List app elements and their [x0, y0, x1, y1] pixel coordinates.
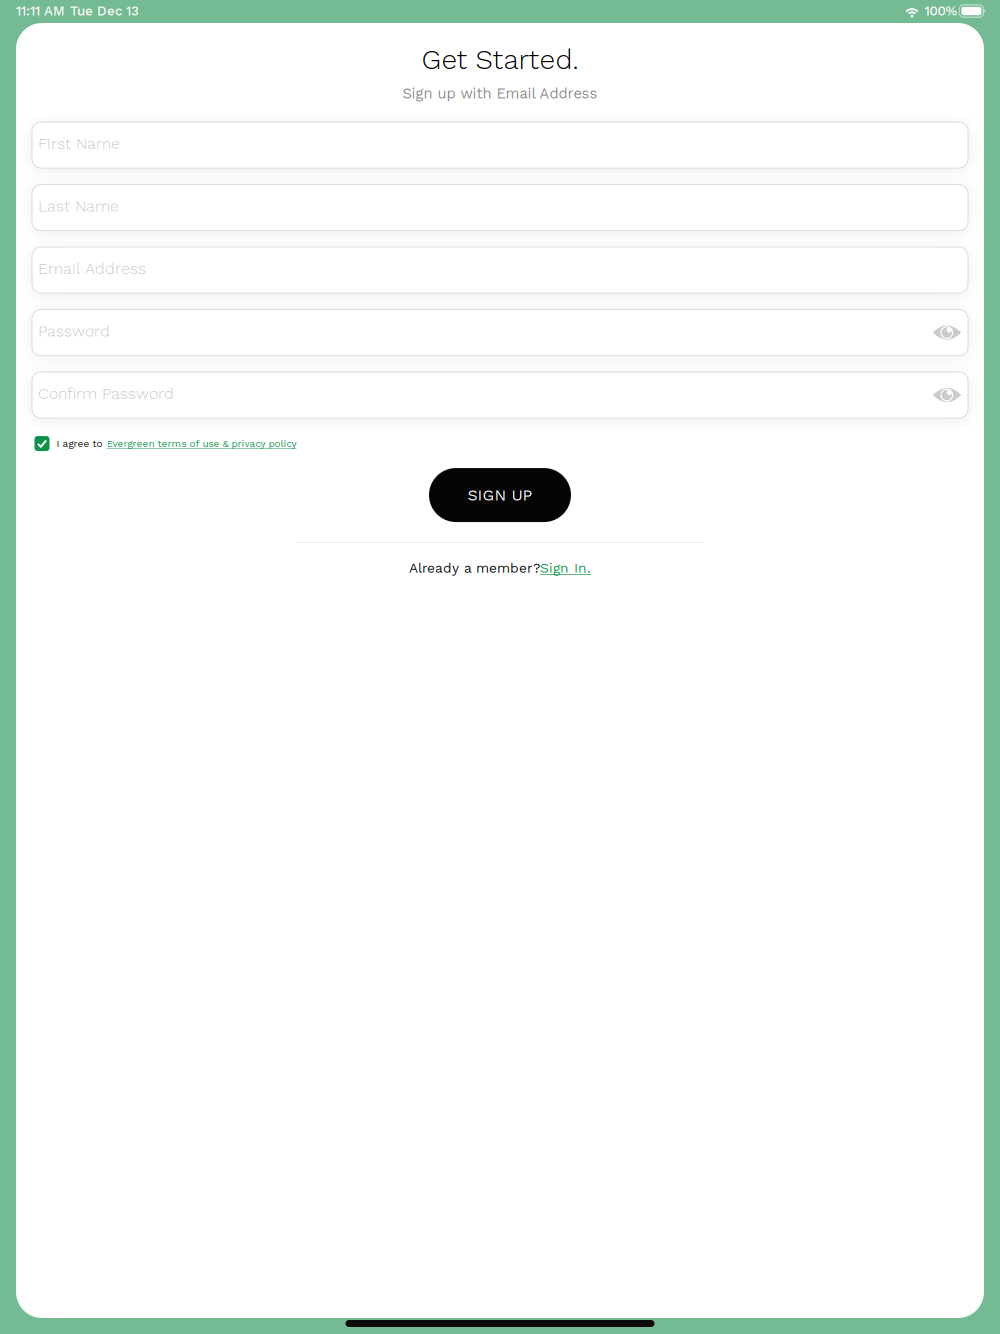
- staticText: Get Started.: [421, 43, 578, 76]
- staticText: Sign up with Email Address: [402, 85, 597, 102]
- staticText: Confirm Password: [38, 384, 174, 403]
- staticText: Tue Dec 13: [70, 3, 139, 19]
- staticText: Already a member?: [409, 560, 540, 576]
- staticText: Sign In.: [540, 560, 591, 576]
- staticText: I agree to: [56, 438, 102, 449]
- button[interactable]: Show password: [930, 375, 964, 415]
- button[interactable]: Show password: [930, 312, 964, 352]
- staticText: 11:11 AM: [16, 3, 65, 19]
- staticText: Email Address: [38, 259, 146, 278]
- staticText: SIGN UP: [467, 486, 532, 504]
- staticText: First Name: [38, 134, 120, 153]
- button[interactable]: Evergreen terms of use & privacy policy: [106, 438, 296, 449]
- staticText: 100%: [924, 3, 957, 19]
- staticText: Last Name: [38, 197, 119, 215]
- staticText: Evergreen terms of use & privacy policy: [106, 438, 296, 449]
- staticText: Password: [38, 322, 110, 340]
- button[interactable]: Sign In.: [540, 560, 591, 576]
- button[interactable]: Agree to terms: [34, 436, 49, 451]
- button[interactable]: SIGN UP: [429, 468, 571, 522]
